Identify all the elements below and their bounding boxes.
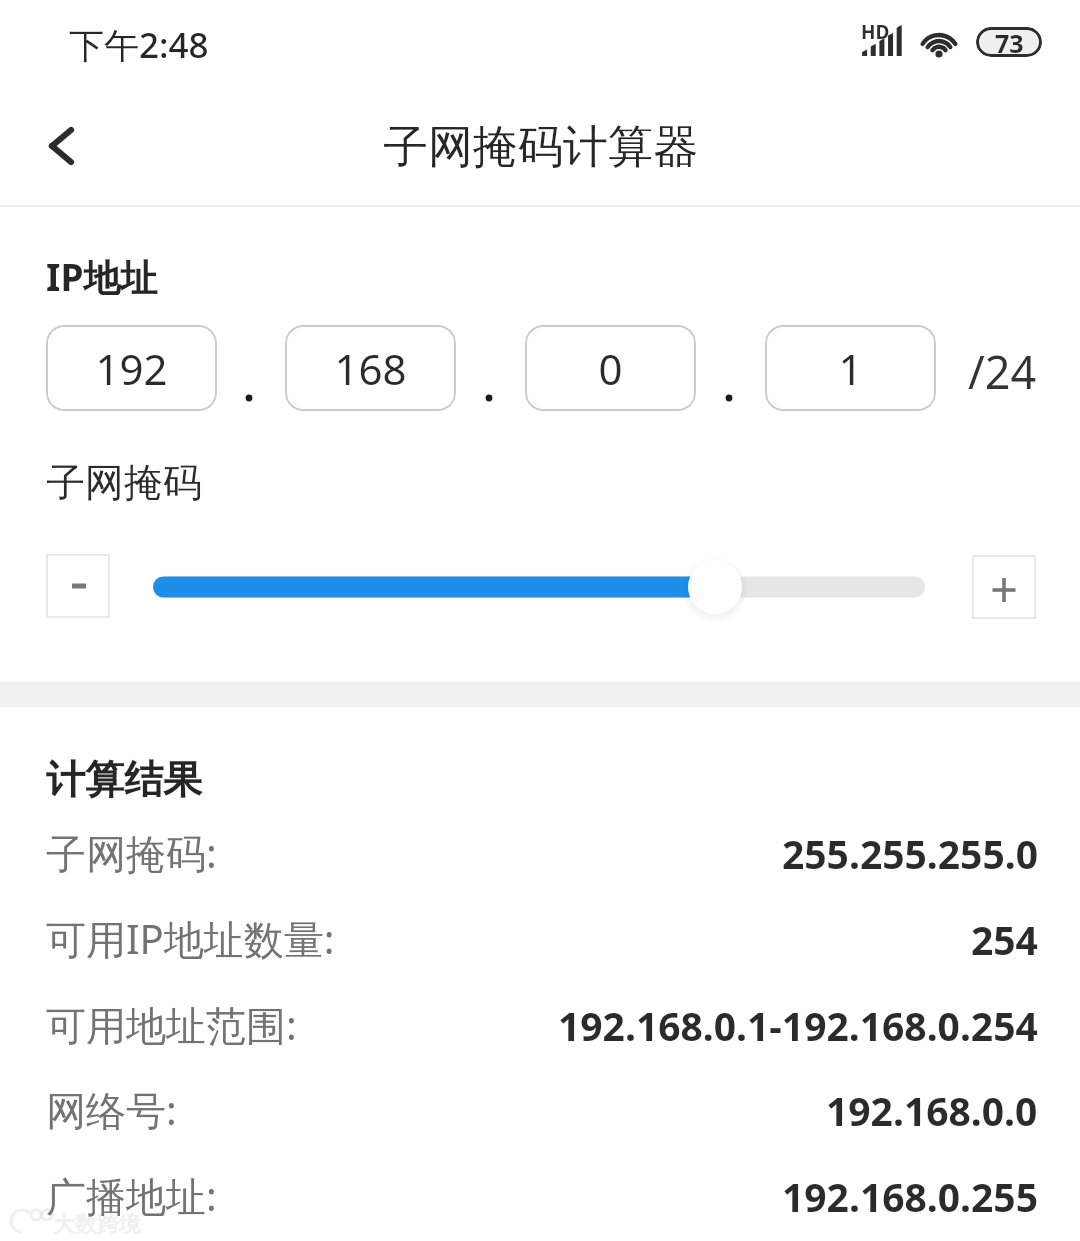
staticText: 子网掩码 <box>46 458 202 507</box>
staticText: 192.168.0.0 <box>826 1084 1038 1137</box>
staticText: 73 <box>995 27 1024 56</box>
staticText: 168 <box>334 340 407 397</box>
button[interactable]: 可用地址范围: <box>0 997 1080 1053</box>
button[interactable]: 广播地址: <box>0 1168 1080 1224</box>
staticText: 255.255.255.0 <box>782 827 1038 880</box>
staticText: 网络号: <box>46 1082 177 1137</box>
staticText: HD <box>861 19 890 45</box>
staticText: 计算结果 <box>46 755 202 804</box>
button[interactable]: Decrease <box>46 554 110 618</box>
staticText: 192.168.0.255 <box>782 1170 1038 1223</box>
staticText: 子网掩码计算器 <box>383 119 698 176</box>
button[interactable]: 子网掩码: <box>0 825 1080 881</box>
staticText: 192.168.0.1-192.168.0.254 <box>558 999 1038 1052</box>
button[interactable]: 192 <box>46 325 217 411</box>
staticText: 子网掩码: <box>46 825 217 880</box>
staticText: 192 <box>95 340 168 397</box>
staticText: 0 <box>598 340 623 397</box>
staticText: IP地址 <box>46 251 158 302</box>
button[interactable]: 168 <box>285 325 456 411</box>
staticText: 广播地址: <box>46 1168 217 1223</box>
button[interactable]: Increase <box>972 555 1036 619</box>
staticText: 254 <box>971 913 1038 966</box>
staticText: 可用IP地址数量: <box>46 911 335 966</box>
button[interactable]: 1 <box>765 325 936 411</box>
button[interactable]: 网络号: <box>0 1082 1080 1138</box>
staticText: 可用地址范围: <box>46 997 297 1052</box>
button[interactable]: Back <box>3 91 113 201</box>
button[interactable]: 可用IP地址数量: <box>0 911 1080 967</box>
staticText: 1 <box>838 340 863 397</box>
staticText: 大数跨境 <box>53 1211 141 1239</box>
button[interactable]: 0 <box>525 325 696 411</box>
staticText: /24 <box>968 341 1037 402</box>
staticText: 下午2:48 <box>69 21 209 69</box>
